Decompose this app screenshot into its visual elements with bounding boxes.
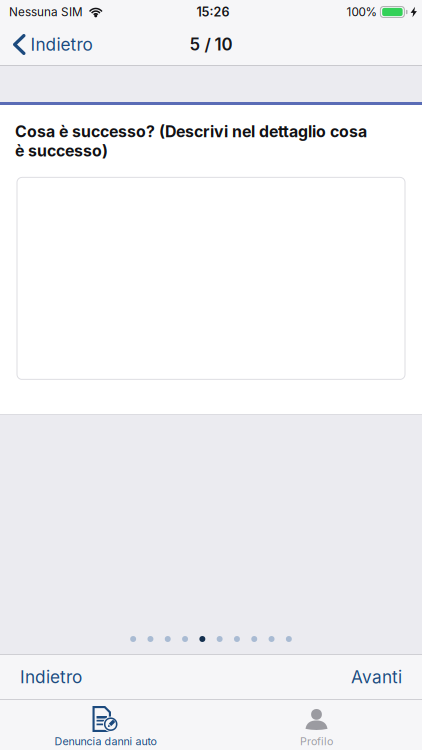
staticText: Indietro [30, 34, 92, 55]
button[interactable]: Indietro [0, 24, 102, 65]
staticText: Denuncia danni auto [54, 735, 156, 748]
staticText: 100% [346, 5, 377, 19]
button[interactable]: Indietro [0, 655, 96, 699]
button[interactable]: Profilo [211, 700, 422, 750]
staticText: 15:26 [196, 4, 229, 20]
button[interactable]: Avanti [337, 655, 422, 699]
staticText: Cosa è successo? (Descrivi nel dettaglio… [15, 122, 367, 160]
staticText: Profilo [300, 735, 333, 748]
staticText: Avanti [351, 667, 402, 687]
staticText: 5 / 10 [189, 34, 232, 55]
button[interactable]: Denuncia danni auto [0, 700, 211, 750]
staticText: Nessuna SIM [9, 5, 83, 19]
staticText: Indietro [20, 667, 82, 687]
